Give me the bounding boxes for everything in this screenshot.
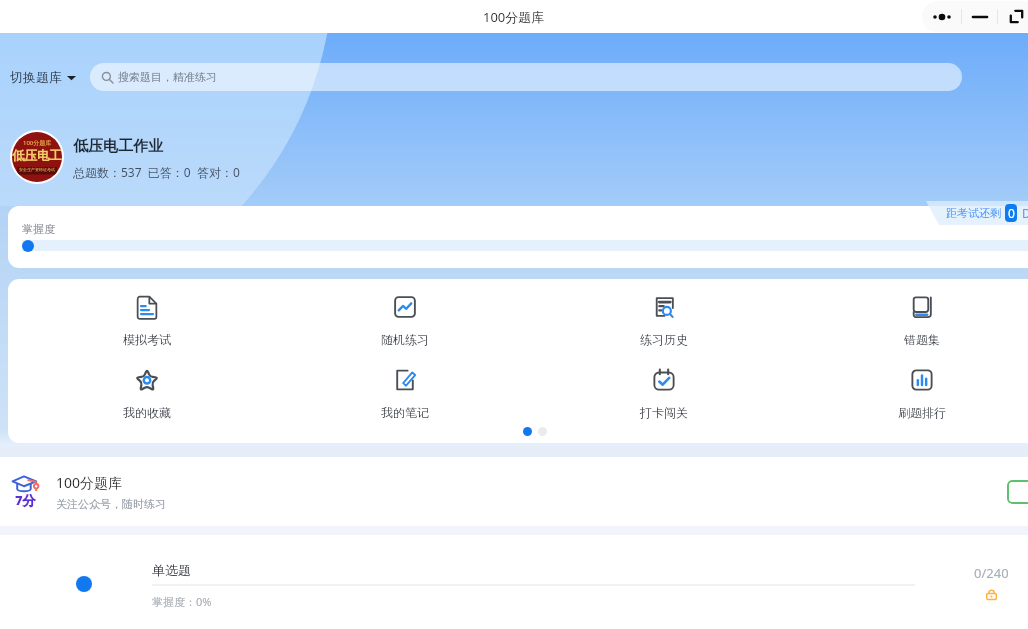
staticText: 安全生产资格证考试 bbox=[19, 167, 55, 172]
button[interactable]: 切换题库 bbox=[8, 65, 78, 89]
staticText: 7分 bbox=[15, 491, 36, 509]
staticText: 0/240 bbox=[974, 564, 1009, 582]
button[interactable]: 100分题库 bbox=[0, 128, 1028, 186]
staticText: 练习历史 bbox=[640, 332, 688, 347]
staticText: 搜索题目，精准练习 bbox=[118, 70, 217, 84]
button[interactable]: 打卡闯关 bbox=[614, 367, 714, 420]
staticText: 总题数：537 已答：0 答对：0 bbox=[73, 164, 240, 180]
button[interactable]: 搜索题目，精准练习 bbox=[90, 63, 962, 91]
staticText: D bbox=[1022, 205, 1028, 221]
staticText: 掌握度：0% bbox=[152, 594, 212, 609]
staticText: 错题集 bbox=[904, 332, 940, 347]
button[interactable]: Maximize bbox=[998, 1, 1028, 32]
staticText: 掌握度 bbox=[22, 222, 55, 236]
button[interactable]: Minimize bbox=[962, 1, 997, 32]
staticText: 我的笔记 bbox=[381, 405, 429, 420]
staticText: 0 bbox=[1008, 205, 1015, 221]
staticText: 刷题排行 bbox=[898, 405, 946, 420]
button[interactable]: 刷题排行 bbox=[872, 367, 972, 420]
staticText: 100分题库 bbox=[56, 473, 123, 492]
staticText: 低压电工 bbox=[12, 148, 62, 164]
staticText: 100分题库 bbox=[23, 139, 52, 147]
staticText: 打卡闯关 bbox=[640, 405, 688, 420]
button[interactable]: 模拟考试 bbox=[97, 294, 197, 347]
button[interactable]: 关注 bbox=[1007, 480, 1028, 504]
staticText: 随机练习 bbox=[381, 332, 429, 347]
staticText: 关注公众号，随时练习 bbox=[56, 497, 166, 511]
button[interactable]: 练习历史 bbox=[614, 294, 714, 347]
staticText: 模拟考试 bbox=[123, 332, 171, 347]
button[interactable]: 单选题 bbox=[8, 535, 1028, 629]
staticText: 切换题库 bbox=[10, 69, 62, 85]
button[interactable]: 我的笔记 bbox=[355, 367, 455, 420]
staticText: 单选题 bbox=[152, 562, 191, 578]
staticText: 100分题库 bbox=[483, 8, 545, 26]
staticText: 距考试还剩 bbox=[946, 206, 1001, 220]
button[interactable]: 错题集 bbox=[872, 294, 972, 347]
staticText: 我的收藏 bbox=[123, 405, 171, 420]
staticText: 低压电工作业 bbox=[73, 137, 163, 156]
button[interactable]: 我的收藏 bbox=[97, 367, 197, 420]
button[interactable]: 随机练习 bbox=[355, 294, 455, 347]
button[interactable]: More bbox=[922, 1, 961, 32]
